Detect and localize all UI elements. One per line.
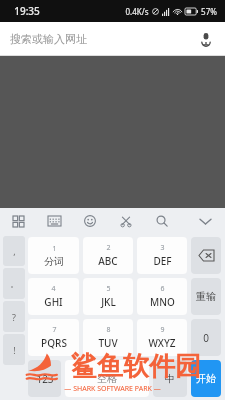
button[interactable]: 开始 — [191, 360, 221, 397]
staticText: PQRS — [41, 336, 67, 350]
staticText: ABC — [98, 254, 118, 268]
staticText: 重输 — [196, 290, 216, 303]
staticText: 鲨鱼软件园 — [71, 350, 201, 383]
staticText: 19:35 — [14, 4, 40, 18]
staticText: 57% — [201, 6, 217, 17]
staticText: — SHARK SOFTWARE PARK — — [64, 384, 161, 394]
button[interactable]: Hide keyboard — [195, 211, 215, 231]
staticText: DEF — [153, 254, 172, 268]
staticText: 1 — [52, 244, 57, 254]
button[interactable]: 8 — [83, 319, 133, 356]
staticText: 开始 — [196, 372, 216, 385]
button[interactable]: 3 — [137, 237, 187, 274]
button[interactable]: Clipboard — [116, 211, 136, 231]
staticText: 0.4K/s — [125, 6, 149, 17]
staticText: MNO — [150, 295, 175, 309]
staticText: 6 — [160, 284, 165, 294]
staticText: 5 — [106, 284, 111, 294]
button[interactable]: 搜索或输入网址 — [0, 22, 225, 56]
button[interactable]: ? — [3, 301, 25, 332]
button[interactable]: 空格 — [65, 360, 149, 397]
button[interactable]: 。 — [3, 268, 25, 299]
button[interactable]: 中 — [153, 360, 187, 397]
button[interactable]: Voice search — [195, 28, 217, 50]
button[interactable]: 4 — [28, 278, 79, 315]
staticText: ! — [13, 344, 16, 356]
button[interactable]: 123 — [28, 360, 61, 397]
staticText: 123 — [36, 372, 54, 386]
button[interactable]: 2 — [83, 237, 133, 274]
staticText: 。 — [10, 278, 19, 289]
button[interactable]: , — [3, 236, 25, 266]
staticText: 2 — [106, 243, 111, 253]
staticText: 中 — [165, 372, 175, 385]
staticText: 0 — [203, 331, 209, 345]
staticText: WXYZ — [148, 336, 176, 350]
button[interactable]: Emoji — [80, 211, 100, 231]
staticText: 空格 — [97, 372, 117, 385]
button[interactable]: Apps — [8, 211, 28, 231]
button[interactable]: 5 — [83, 278, 133, 315]
staticText: 分词 — [44, 255, 64, 268]
button[interactable]: 0 — [191, 319, 221, 356]
staticText: , — [13, 245, 16, 257]
button[interactable]: ! — [3, 334, 25, 365]
staticText: 搜索或输入网址 — [10, 32, 87, 46]
staticText: 8 — [106, 325, 111, 335]
button[interactable]: 1 — [28, 237, 79, 274]
staticText: JKL — [101, 295, 116, 309]
button[interactable]: 重输 — [191, 278, 221, 315]
button[interactable]: Backspace — [191, 237, 221, 274]
button[interactable]: 6 — [137, 278, 187, 315]
staticText: 3 — [160, 243, 165, 253]
button[interactable]: 9 — [137, 319, 187, 356]
staticText: ? — [12, 311, 16, 323]
button[interactable]: 7 — [28, 319, 79, 356]
staticText: GHI — [44, 295, 63, 309]
staticText: 4 — [51, 284, 56, 294]
staticText: 9 — [160, 325, 165, 335]
staticText: TUV — [98, 336, 118, 350]
staticText: 7 — [52, 325, 57, 335]
button[interactable]: Search — [152, 211, 172, 231]
button[interactable]: Keyboard layout — [44, 211, 64, 231]
